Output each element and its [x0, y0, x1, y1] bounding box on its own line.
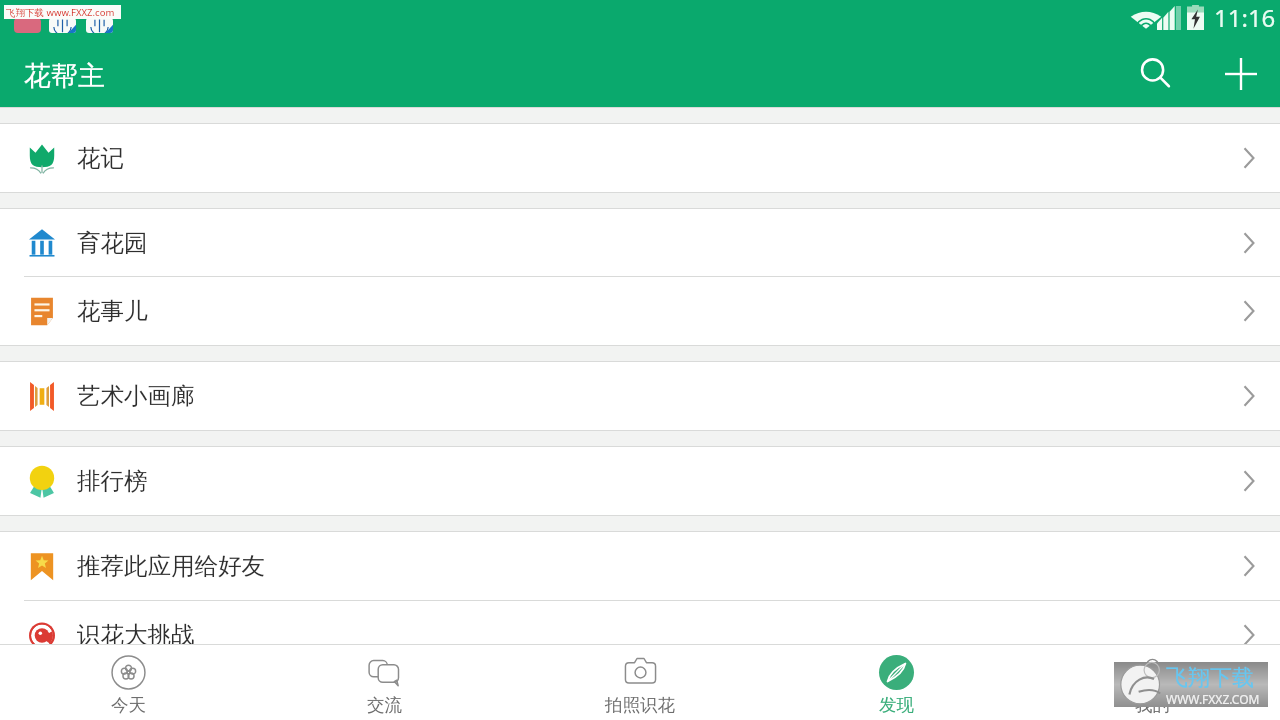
staticText: 拍照识花 — [605, 694, 675, 716]
staticText: 交流 — [367, 694, 402, 716]
button[interactable]: Search — [1124, 42, 1188, 106]
staticText: 我的 — [1135, 694, 1170, 716]
button[interactable]: 推荐此应用给好友 — [0, 532, 1280, 600]
staticText: 花记 — [77, 143, 124, 173]
button[interactable]: 交流 — [256, 645, 512, 720]
staticText: 排行榜 — [77, 466, 148, 496]
staticText: 飞翔下载 — [1166, 664, 1254, 692]
button[interactable]: 育花园 — [0, 209, 1280, 276]
staticText: 11:16 — [1214, 1, 1276, 34]
staticText: 艺术小画廊 — [77, 381, 195, 411]
staticText: 识花大挑战 — [77, 620, 195, 644]
staticText: 育花园 — [77, 228, 148, 258]
button[interactable]: Add — [1209, 42, 1273, 106]
staticText: 花帮主 — [24, 59, 105, 93]
button[interactable]: 花记 — [0, 124, 1280, 192]
staticText: 发现 — [879, 694, 914, 716]
staticText: 花事儿 — [77, 296, 148, 326]
staticText: WWW.FXXZ.COM — [1166, 691, 1260, 707]
staticText: 推荐此应用给好友 — [77, 551, 265, 581]
staticText: 今天 — [111, 694, 146, 716]
button[interactable]: 花事儿 — [0, 277, 1280, 345]
button[interactable]: 识花大挑战 — [0, 601, 1280, 644]
button[interactable]: 排行榜 — [0, 447, 1280, 515]
button[interactable]: 拍照识花 — [512, 645, 768, 720]
staticText: 飞翔下载 www.FXXZ.com — [6, 6, 115, 19]
button[interactable]: 今天 — [0, 645, 256, 720]
button[interactable]: 发现 — [768, 645, 1024, 720]
button[interactable]: 我的 — [1024, 645, 1280, 720]
button[interactable]: 艺术小画廊 — [0, 362, 1280, 430]
